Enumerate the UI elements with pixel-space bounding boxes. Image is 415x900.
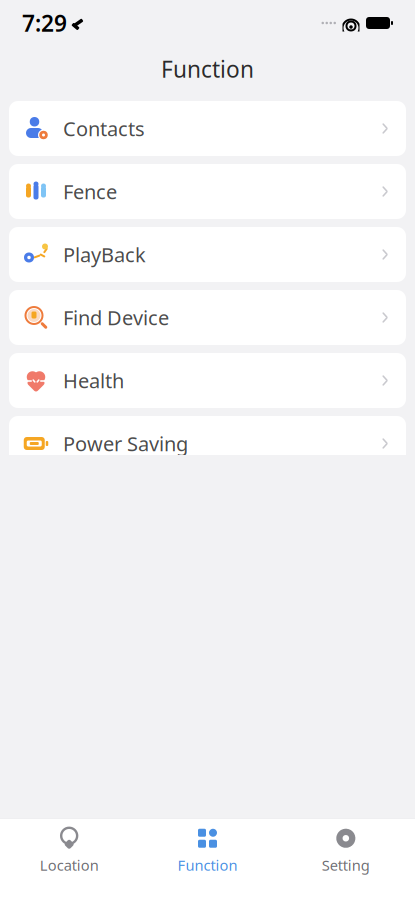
- button[interactable]: Contacts: [9, 101, 406, 156]
- button[interactable]: Find Device: [9, 290, 406, 345]
- button[interactable]: Power Saving: [9, 416, 406, 471]
- staticText: Health: [63, 367, 124, 394]
- staticText: Location: [40, 855, 99, 875]
- button[interactable]: Setting: [277, 826, 415, 874]
- button[interactable]: Function: [138, 826, 277, 874]
- button[interactable]: Location: [0, 826, 138, 874]
- staticText: Contacts: [63, 115, 145, 142]
- button[interactable]: PlayBack: [9, 227, 406, 282]
- staticText: Function: [177, 855, 237, 875]
- staticText: Fence: [63, 178, 117, 205]
- staticText: Power Saving: [63, 430, 188, 457]
- button[interactable]: Fence: [9, 164, 406, 219]
- staticText: Setting: [322, 855, 370, 875]
- staticText: Find Device: [63, 304, 169, 331]
- button[interactable]: Health: [9, 353, 406, 408]
- staticText: 7:29: [22, 8, 67, 38]
- staticText: PlayBack: [63, 241, 146, 268]
- staticText: Function: [161, 54, 254, 84]
